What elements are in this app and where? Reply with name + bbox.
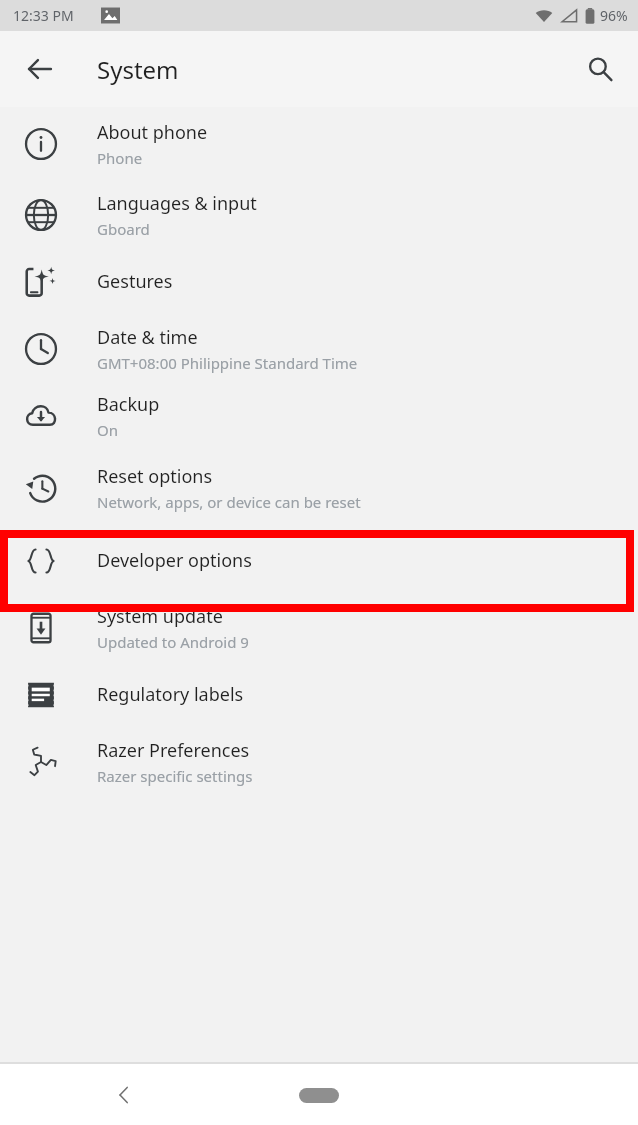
button[interactable]: Back: [98, 1069, 150, 1121]
button[interactable]: Date & time: [0, 315, 638, 382]
staticText: Razer specific settings: [97, 766, 253, 786]
staticText: Reset options: [97, 464, 213, 489]
staticText: Phone: [97, 148, 143, 168]
staticText: Gestures: [97, 269, 173, 294]
button[interactable]: Search: [574, 43, 626, 95]
staticText: 12:33 PM: [13, 6, 74, 25]
button[interactable]: Languages & input: [0, 181, 638, 248]
staticText: System: [97, 53, 179, 86]
staticText: System update: [97, 604, 223, 629]
button[interactable]: Regulatory labels: [0, 661, 638, 728]
button[interactable]: Reset options: [0, 449, 638, 527]
staticText: 96%: [600, 6, 628, 25]
staticText: Developer options: [97, 548, 252, 573]
button[interactable]: Developer options: [0, 527, 638, 594]
button[interactable]: About phone: [0, 107, 638, 181]
button[interactable]: Back: [14, 43, 66, 95]
staticText: About phone: [97, 120, 208, 145]
staticText: Updated to Android 9: [97, 632, 249, 652]
staticText: Languages & input: [97, 191, 257, 216]
staticText: Gboard: [97, 219, 150, 239]
staticText: On: [97, 420, 118, 440]
button[interactable]: Backup: [0, 382, 638, 449]
staticText: Regulatory labels: [97, 682, 244, 707]
button[interactable]: Gestures: [0, 248, 638, 315]
staticText: Date & time: [97, 325, 198, 350]
button[interactable]: Razer Preferences: [0, 728, 638, 795]
staticText: Backup: [97, 392, 160, 417]
staticText: Razer Preferences: [97, 738, 250, 763]
staticText: GMT+08:00 Philippine Standard Time: [97, 353, 358, 373]
button[interactable]: System update: [0, 594, 638, 661]
staticText: Network, apps, or device can be reset: [97, 492, 361, 512]
button[interactable]: Home: [291, 1080, 347, 1110]
